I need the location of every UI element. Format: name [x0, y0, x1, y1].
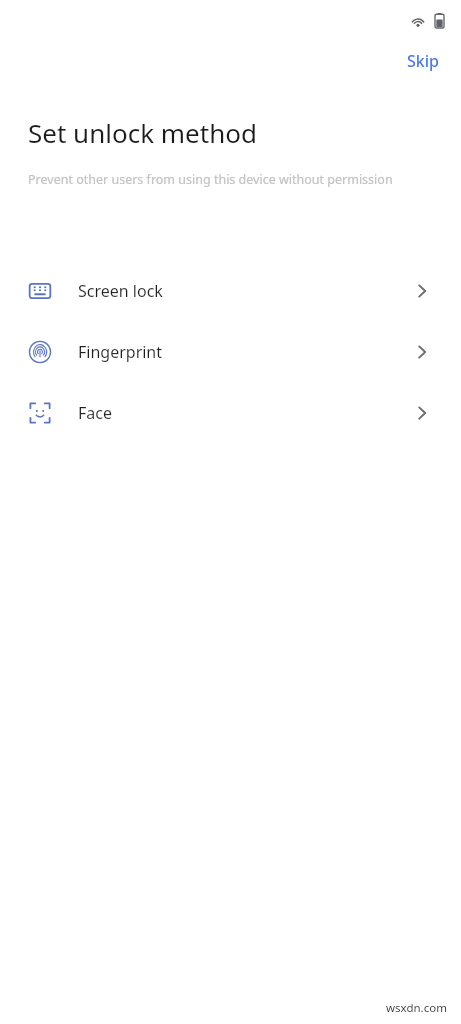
staticText: Set unlock method [28, 115, 257, 150]
button[interactable]: Screen lock [0, 260, 461, 321]
staticText: wsxdn.com [386, 1000, 447, 1016]
button[interactable]: Fingerprint [0, 321, 461, 382]
staticText: Fingerprint [78, 341, 163, 363]
other: Face [412, 403, 432, 423]
other: Screen lock [412, 281, 432, 301]
staticText: Prevent other users from using this devi… [28, 171, 393, 188]
button[interactable]: Face [0, 382, 461, 443]
button[interactable]: Skip [385, 42, 461, 80]
staticText: Face [78, 402, 112, 424]
staticText: Skip [407, 50, 439, 72]
staticText: Screen lock [78, 280, 163, 302]
other: Fingerprint [412, 342, 432, 362]
